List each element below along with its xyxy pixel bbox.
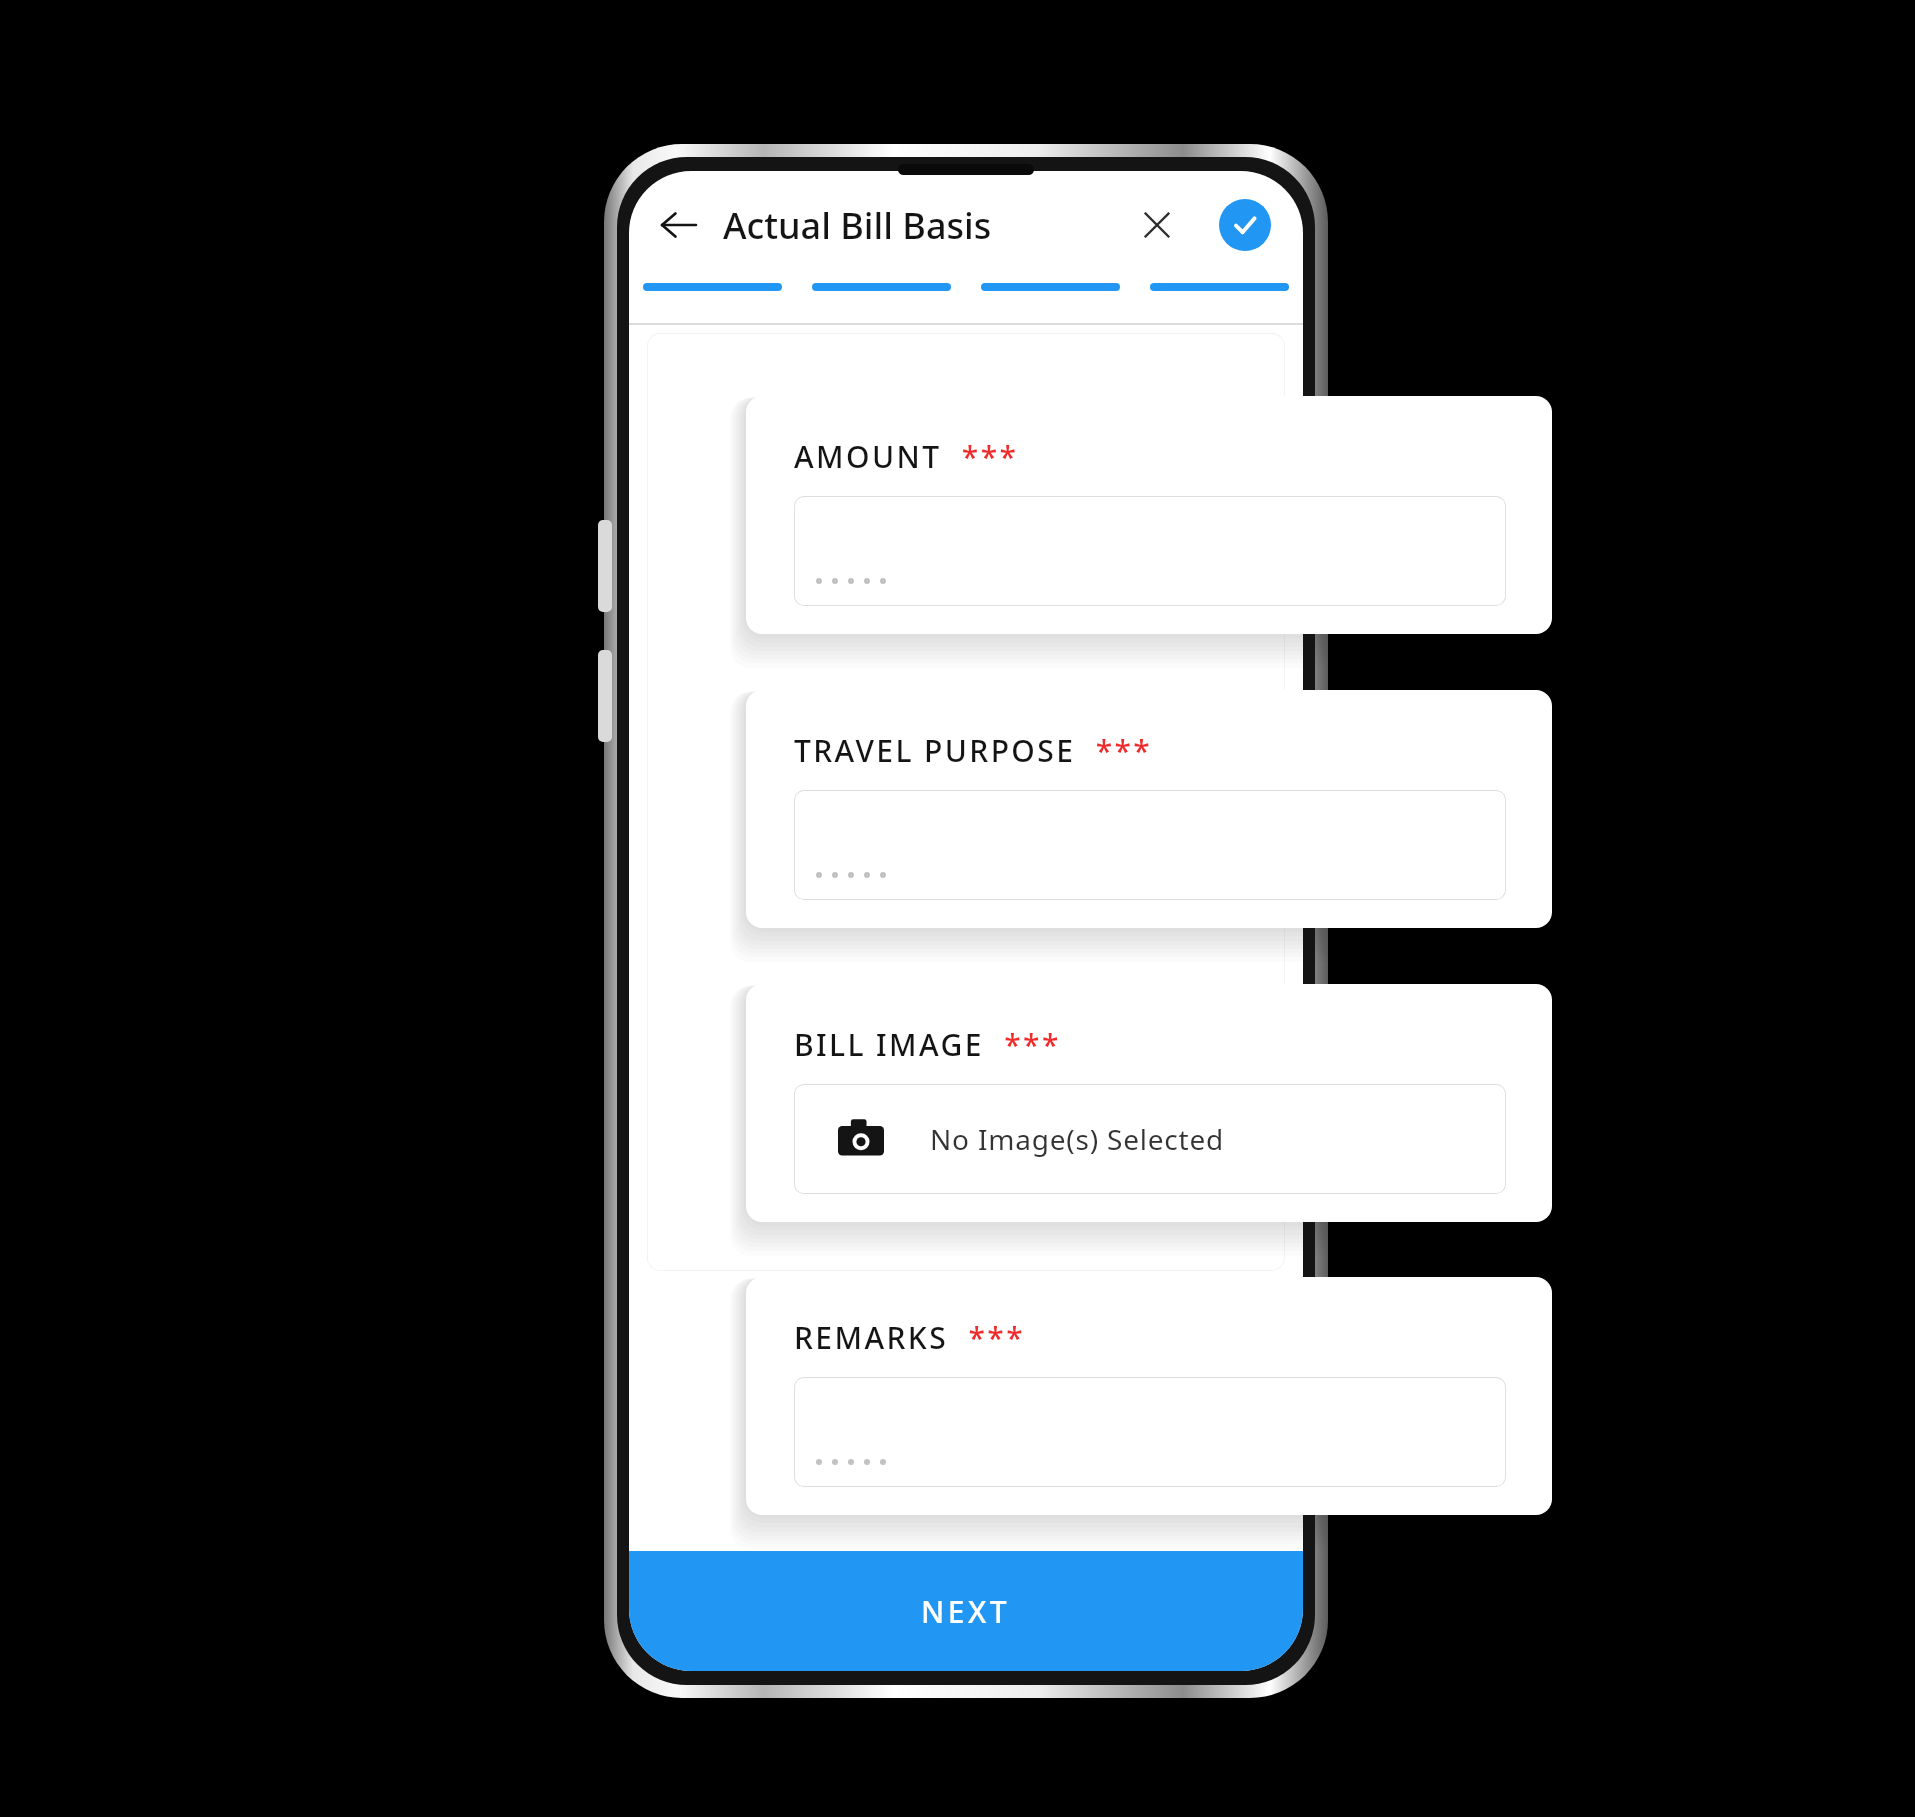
staticText: BILL IMAGE *** bbox=[794, 1024, 1061, 1065]
staticText: REMARKS *** bbox=[794, 1317, 1025, 1358]
button[interactable]: REMARKS *** bbox=[746, 1277, 1552, 1515]
button[interactable]: Step 1 bbox=[643, 283, 782, 291]
button[interactable]: Step 2 bbox=[812, 283, 951, 291]
staticText: Actual Bill Basis bbox=[723, 201, 992, 250]
other: Camera bbox=[838, 1116, 884, 1162]
button[interactable]: Step 4 bbox=[1150, 283, 1289, 291]
staticText: NEXT bbox=[921, 1591, 1011, 1632]
staticText: AMOUNT *** bbox=[794, 436, 1019, 477]
button[interactable]: Back bbox=[649, 195, 709, 255]
button[interactable]: NEXT bbox=[629, 1551, 1303, 1671]
button[interactable]: AMOUNT *** bbox=[746, 396, 1552, 634]
button[interactable]: TRAVEL PURPOSE *** bbox=[746, 690, 1552, 928]
button[interactable]: Confirm bbox=[1219, 199, 1271, 251]
staticText: No Image(s) Selected bbox=[930, 1120, 1225, 1158]
button[interactable]: Step 3 bbox=[981, 283, 1120, 291]
staticText: TRAVEL PURPOSE *** bbox=[794, 730, 1153, 771]
button[interactable]: Close bbox=[1129, 197, 1185, 253]
button[interactable]: BILL IMAGE *** bbox=[746, 984, 1552, 1222]
